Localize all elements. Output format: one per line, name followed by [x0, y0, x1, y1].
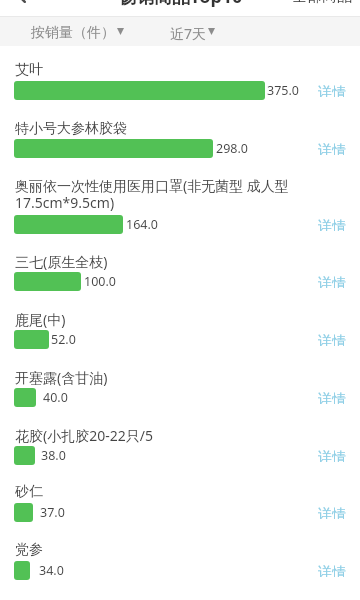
button[interactable]: 详情: [308, 81, 360, 100]
staticText: 详情: [318, 218, 346, 231]
button[interactable]: 全部商品: [282, 0, 360, 14]
button[interactable]: 砂仁: [0, 483, 360, 521]
button[interactable]: 鹿尾(中): [0, 310, 360, 348]
button[interactable]: 详情: [308, 561, 360, 580]
staticText: 37.0: [40, 504, 65, 521]
button[interactable]: 党参: [0, 541, 360, 579]
staticText: 奥丽依一次性使用医用口罩(非无菌型 成人型 17.5cm*9.5cm): [15, 176, 346, 212]
button[interactable]: 详情: [308, 330, 360, 349]
staticText: 34.0: [39, 562, 64, 579]
staticText: 40.0: [43, 389, 68, 406]
staticText: 详情: [318, 449, 346, 462]
staticText: 全部商品: [292, 0, 352, 6]
button[interactable]: 花胶(小扎胶20-22只/5: [0, 426, 360, 464]
staticText: 375.0: [267, 82, 299, 99]
button[interactable]: 返回: [3, 0, 37, 10]
staticText: 164.0: [126, 216, 158, 233]
staticText: 详情: [318, 333, 346, 346]
staticText: 详情: [318, 564, 346, 577]
button[interactable]: 详情: [308, 446, 360, 465]
staticText: 按销量（件）: [31, 24, 115, 42]
staticText: 花胶(小扎胶20-22只/5: [15, 426, 153, 445]
button[interactable]: 详情: [308, 139, 360, 158]
staticText: 畅销商品Top10: [118, 0, 243, 9]
staticText: 砂仁: [15, 483, 43, 501]
staticText: 艾叶: [15, 61, 43, 79]
staticText: 详情: [318, 142, 346, 155]
staticText: 党参: [15, 541, 43, 559]
staticText: 详情: [318, 391, 346, 404]
staticText: 298.0: [216, 140, 248, 157]
button[interactable]: 详情: [308, 503, 360, 522]
staticText: 近7天: [170, 24, 207, 43]
button[interactable]: 按销量（件）: [25, 16, 130, 46]
button[interactable]: 艾叶: [0, 61, 360, 99]
staticText: 详情: [318, 506, 346, 519]
staticText: 详情: [318, 84, 346, 97]
button[interactable]: 近7天: [164, 16, 221, 46]
staticText: 100.0: [84, 273, 116, 290]
staticText: 特小号大参林胶袋: [15, 120, 127, 138]
button[interactable]: 特小号大参林胶袋: [0, 120, 360, 158]
staticText: 开塞露(含甘油): [15, 368, 108, 387]
button[interactable]: 详情: [308, 272, 360, 291]
staticText: 详情: [318, 275, 346, 288]
button[interactable]: 三七(原生全枝): [0, 252, 360, 290]
staticText: 38.0: [41, 447, 66, 464]
staticText: 三七(原生全枝): [15, 252, 108, 271]
staticText: 鹿尾(中): [15, 310, 66, 329]
button[interactable]: 开塞露(含甘油): [0, 368, 360, 406]
staticText: 52.0: [51, 331, 76, 348]
button[interactable]: 奥丽依一次性使用医用口罩(非无菌型 成人型 17.5cm*9.5cm): [0, 176, 360, 214]
button[interactable]: 详情: [308, 388, 360, 407]
button[interactable]: 详情: [308, 215, 360, 234]
